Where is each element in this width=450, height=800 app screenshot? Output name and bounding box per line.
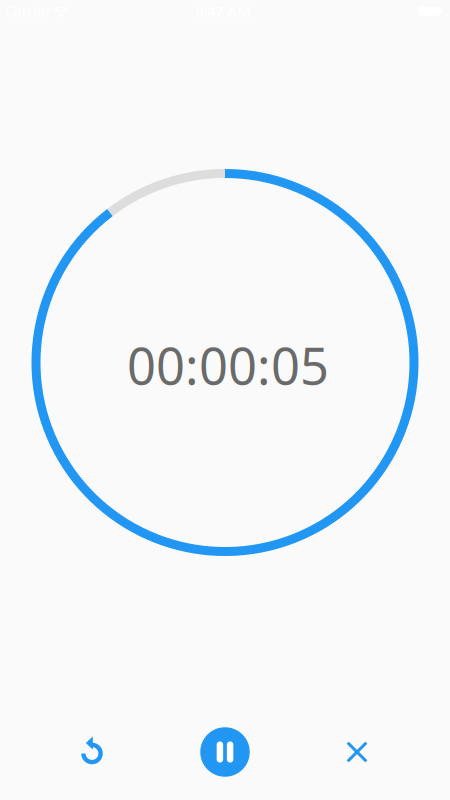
button[interactable]: Pause (200, 727, 250, 777)
staticText: 00:00:05 (127, 331, 329, 399)
button[interactable]: Restart (68, 728, 116, 776)
button[interactable]: Close (333, 728, 381, 776)
